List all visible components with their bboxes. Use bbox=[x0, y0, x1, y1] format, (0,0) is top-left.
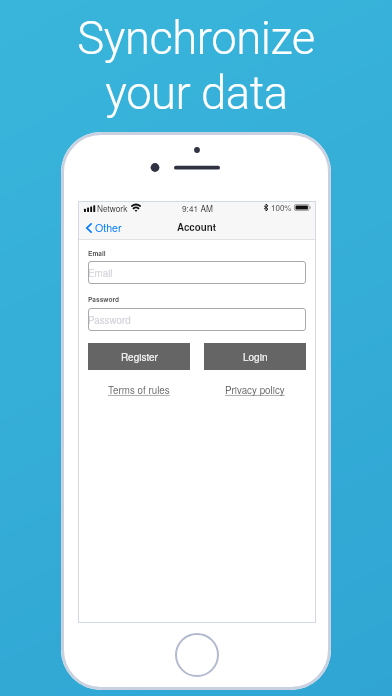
staticText: Network bbox=[97, 202, 128, 214]
staticText: Email bbox=[88, 249, 106, 258]
button[interactable]: Password bbox=[88, 308, 306, 331]
staticText: Terms of rules bbox=[108, 383, 170, 397]
button[interactable]: Privacy policy bbox=[204, 383, 306, 397]
staticText: Password bbox=[88, 313, 131, 327]
staticText: Email bbox=[88, 266, 113, 280]
staticText: Password bbox=[88, 295, 120, 304]
staticText: 9:41 AM bbox=[182, 202, 213, 214]
staticText: Account bbox=[177, 220, 217, 234]
staticText: 100% bbox=[271, 202, 292, 213]
button[interactable]: Login bbox=[204, 343, 306, 370]
staticText: Synchronize bbox=[77, 12, 315, 65]
staticText: your data bbox=[105, 67, 288, 120]
button[interactable]: Terms of rules bbox=[88, 383, 190, 397]
staticText: Register bbox=[121, 350, 158, 364]
staticText: Login bbox=[243, 350, 268, 364]
button[interactable]: Other bbox=[78, 217, 128, 238]
staticText: Other bbox=[95, 220, 122, 235]
button[interactable]: Register bbox=[88, 343, 190, 370]
button[interactable]: Email bbox=[88, 261, 306, 284]
staticText: Privacy policy bbox=[225, 383, 285, 397]
